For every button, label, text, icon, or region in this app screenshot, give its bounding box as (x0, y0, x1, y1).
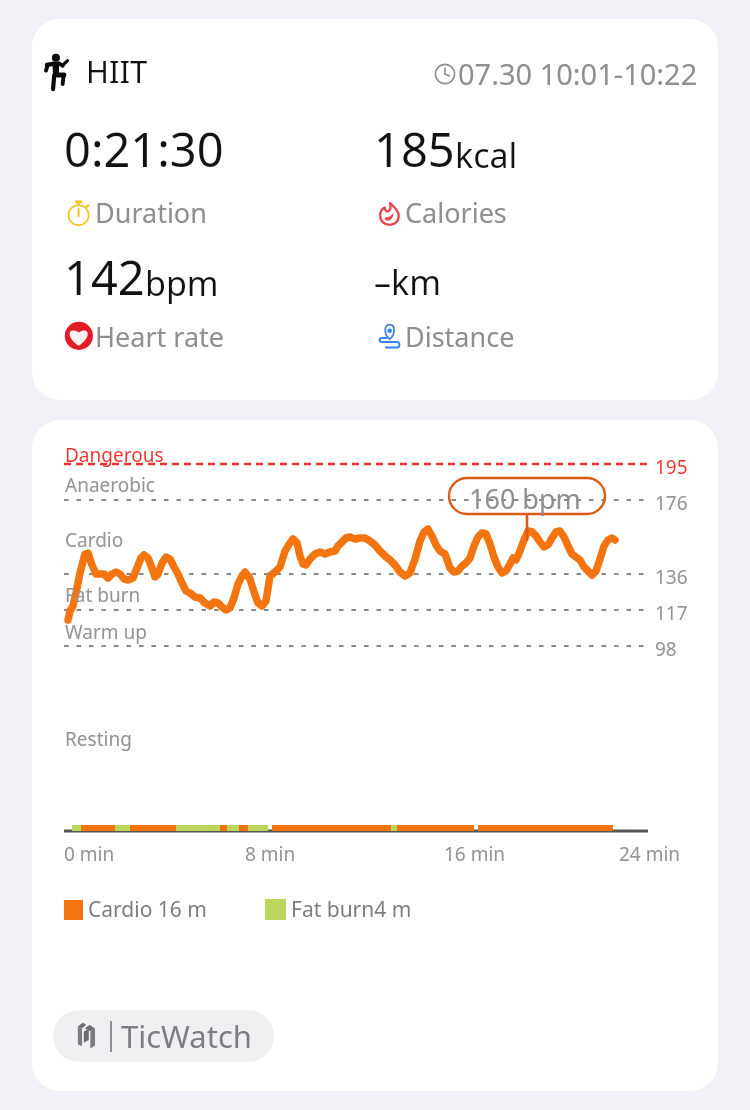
staticText: Distance (405, 318, 515, 355)
staticText: Fat burn (65, 582, 141, 608)
staticText: bpm (145, 260, 219, 306)
button[interactable]: Cardio 16 m (64, 895, 412, 924)
staticText: 176 (655, 490, 688, 516)
staticText: 16 min (444, 841, 506, 867)
button[interactable]: 0:21:30 (64, 108, 224, 231)
staticText: Anaerobic (65, 472, 155, 498)
staticText: HIIT (86, 50, 148, 92)
staticText: 98 (655, 636, 677, 662)
staticText: 117 (655, 600, 688, 626)
staticText: Calories (405, 194, 507, 231)
staticText: 185 (374, 117, 455, 181)
staticText: Dangerous (65, 442, 164, 468)
staticText: Heart rate (95, 318, 225, 355)
button[interactable]: 142 (64, 232, 225, 355)
button[interactable]: TicWatch (53, 1010, 274, 1062)
staticText: Warm up (65, 619, 147, 645)
staticText: Duration (95, 194, 207, 231)
staticText: 8 min (245, 841, 296, 867)
staticText: kcal (455, 132, 518, 178)
button[interactable]: 185 (374, 108, 518, 231)
button[interactable]: HIIT (43, 50, 148, 92)
staticText: –km (374, 259, 441, 305)
staticText: 24 min (619, 841, 681, 867)
staticText: Cardio (65, 527, 124, 553)
staticText: TicWatch (121, 1015, 252, 1057)
staticText: 160 bpm (469, 480, 581, 517)
staticText: Cardio 16 m (88, 895, 207, 924)
staticText: 195 (655, 454, 688, 480)
staticText: 0 min (64, 841, 115, 867)
staticText: Resting (65, 726, 132, 752)
staticText: 136 (655, 564, 688, 590)
staticText: 0:21:30 (64, 117, 224, 181)
staticText: 142 (64, 245, 145, 309)
button[interactable]: –km (374, 232, 515, 355)
staticText: 07.30 10:01-10:22 (458, 54, 698, 93)
staticText: Fat burn4 m (291, 895, 412, 924)
